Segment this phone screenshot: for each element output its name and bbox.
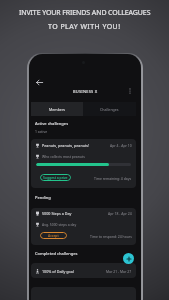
staticText: Active challenges [35, 121, 69, 126]
button[interactable]: Challenges [83, 102, 136, 116]
staticText: Who collects most peanuts [42, 154, 85, 159]
button[interactable]: Back [34, 77, 44, 87]
staticText: 1 active [35, 129, 48, 134]
staticText: Accept [48, 233, 59, 238]
staticText: 5000 Steps a Day [42, 211, 72, 216]
staticText: Suggest a prize [43, 175, 68, 180]
staticText: Peanuts, peanuts, peanuts! [42, 143, 90, 148]
staticText: TO PLAY WITH YOU! [48, 22, 121, 32]
button[interactable]: Peanuts, peanuts, peanuts! [31, 139, 136, 188]
button[interactable]: More options [125, 86, 135, 96]
button[interactable]: Members [31, 102, 83, 116]
button[interactable]: 5000 Steps a Day [31, 208, 136, 245]
staticText: Completed challenges [35, 251, 78, 256]
staticText: 100% of Daily goal [42, 269, 74, 274]
staticText: Members [49, 107, 66, 112]
staticText: Time remaining: 4 days [94, 176, 132, 181]
staticText: Challenges [100, 107, 119, 112]
staticText: Apr 4 - Apr 10 [110, 143, 132, 148]
staticText: Apr 18 - Apr 24 [108, 211, 132, 216]
staticText: INVITE YOUR FRIENDS AND COLLEAGUES [19, 8, 151, 18]
staticText: Mar 21 - Mar 27 [106, 269, 132, 274]
button[interactable]: 100% of Daily goal [31, 263, 136, 278]
staticText: Pending [35, 195, 51, 200]
button[interactable]: Suggest a prize [40, 174, 71, 181]
staticText: Avg. 5000 steps a day [42, 222, 77, 227]
staticText: Time to respond: 24 hours [90, 234, 132, 239]
staticText: BUSINESS X [73, 89, 98, 94]
button[interactable]: Add challenge [123, 253, 134, 264]
button[interactable]: Accept [40, 232, 67, 239]
